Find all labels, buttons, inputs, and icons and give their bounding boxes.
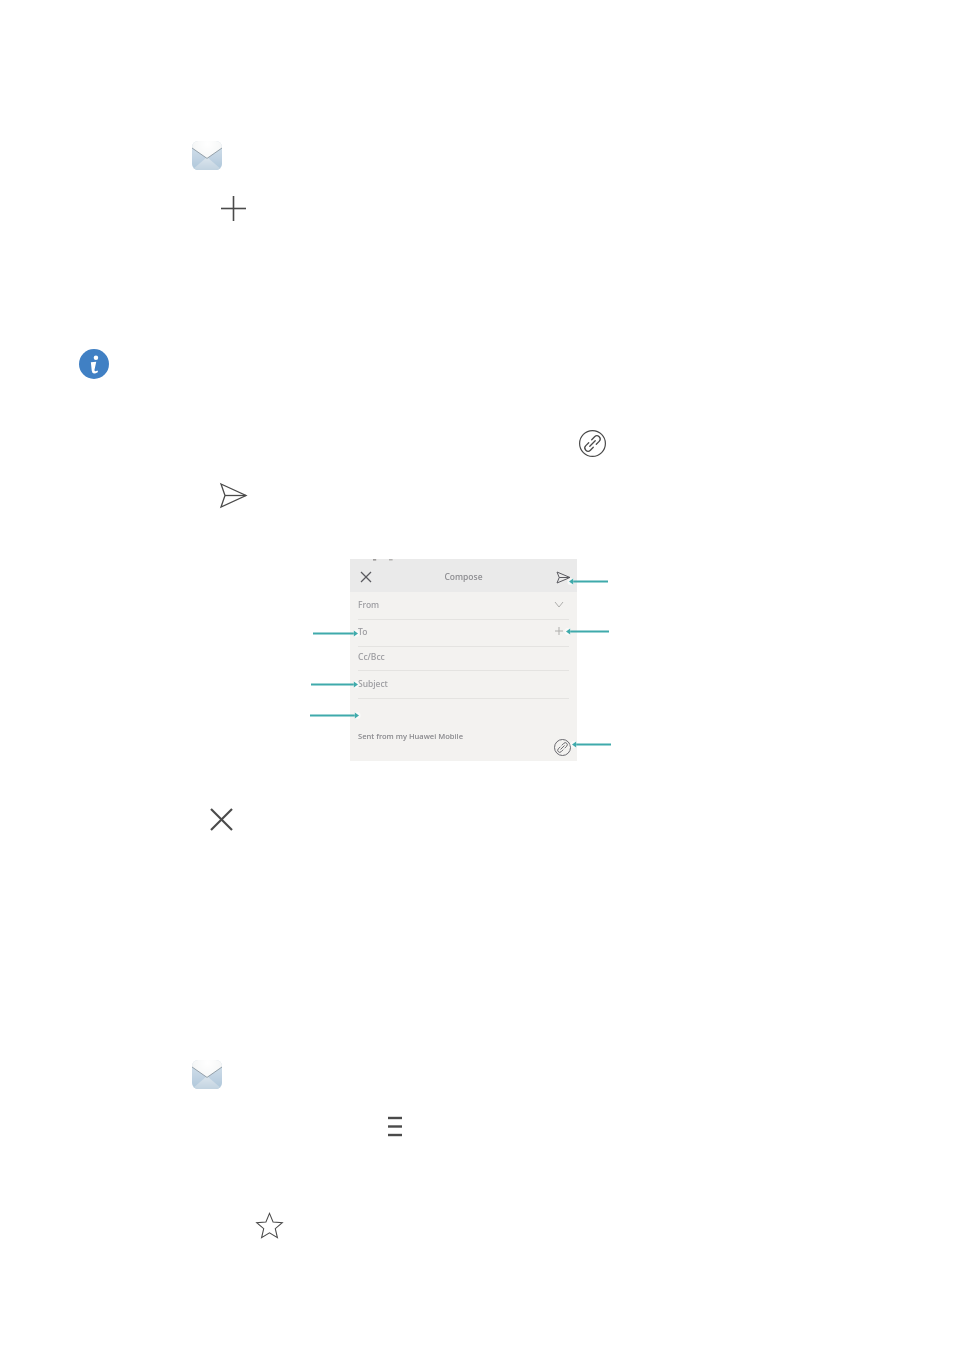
button[interactable]: Close	[211, 809, 232, 830]
button[interactable]: To	[350, 623, 577, 647]
button[interactable]: Email	[192, 1060, 222, 1089]
button[interactable]: Cc/Bcc	[350, 648, 577, 671]
button[interactable]: Favorite	[256, 1212, 283, 1240]
staticText: Compose	[350, 571, 577, 583]
button[interactable]: Email	[192, 141, 222, 170]
button[interactable]: From	[350, 596, 577, 620]
button[interactable]: Information	[79, 349, 109, 379]
button[interactable]: Close	[361, 572, 371, 582]
button[interactable]: Send	[221, 484, 246, 507]
button[interactable]: Menu	[388, 1115, 402, 1138]
staticText: Sent from my Huawei Mobile	[358, 731, 464, 741]
button[interactable]: Attach	[554, 739, 571, 756]
staticText: Cc/Bcc	[358, 651, 385, 663]
button[interactable]: Subject	[350, 675, 577, 699]
button[interactable]: Send	[557, 572, 570, 583]
staticText: From	[358, 599, 380, 611]
button[interactable]: Add	[221, 196, 246, 221]
staticText: Subject	[358, 678, 388, 690]
button[interactable]: Attach link	[579, 430, 606, 457]
staticText: To	[358, 626, 368, 638]
